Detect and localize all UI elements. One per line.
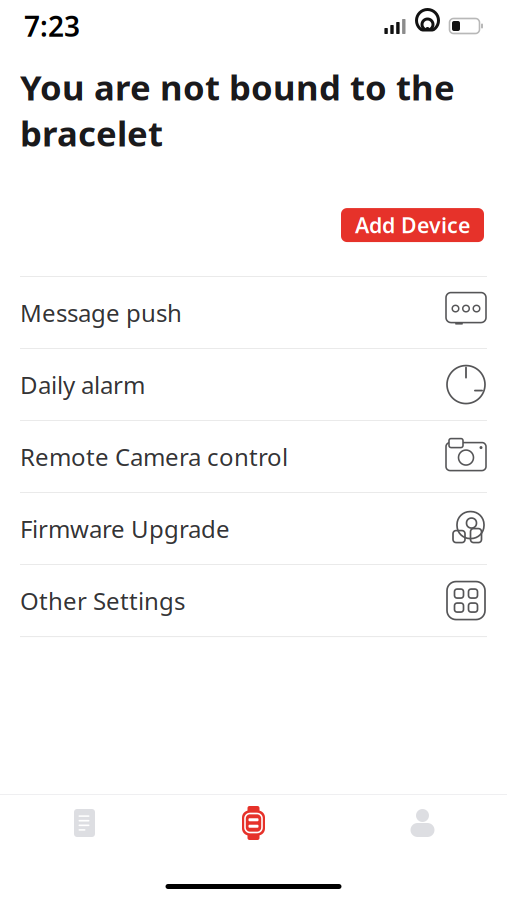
staticText: 7:23	[24, 7, 80, 45]
button[interactable]: Other Settings	[0, 565, 507, 636]
staticText: Add Device	[355, 211, 470, 239]
button[interactable]: Message push	[0, 277, 507, 348]
staticText: Other Settings	[20, 585, 185, 616]
button[interactable]: Daily alarm	[0, 349, 507, 420]
staticText: Remote Camera control	[20, 441, 288, 472]
button[interactable]: Device	[169, 795, 338, 851]
staticText: Daily alarm	[20, 369, 145, 400]
staticText: You are not bound to the bracelet	[20, 64, 455, 156]
button[interactable]: Records	[0, 795, 169, 851]
button[interactable]: Firmware Upgrade	[0, 493, 507, 564]
staticText: Firmware Upgrade	[20, 513, 230, 544]
button[interactable]: Add Device	[341, 208, 484, 242]
button[interactable]: Profile	[338, 795, 507, 851]
staticText: Message push	[20, 297, 182, 328]
button[interactable]: Remote Camera control	[0, 421, 507, 492]
